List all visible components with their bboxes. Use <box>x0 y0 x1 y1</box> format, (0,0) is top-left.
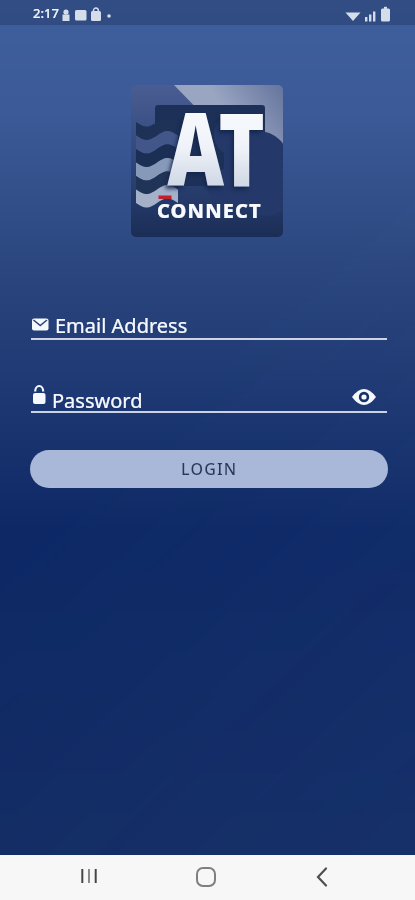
staticText: Password <box>52 387 143 414</box>
button[interactable]: LOGIN <box>30 450 388 488</box>
button[interactable] <box>306 861 338 893</box>
button[interactable] <box>74 861 106 893</box>
button[interactable]: Password <box>24 378 394 423</box>
staticText: Email Address <box>55 312 188 339</box>
staticText: AT <box>167 85 265 216</box>
staticText: 2:17 <box>33 4 59 22</box>
button[interactable]: Email Address <box>24 305 394 350</box>
staticText: CONNECT <box>157 197 262 221</box>
button[interactable] <box>352 388 376 406</box>
button[interactable] <box>190 861 222 893</box>
staticText: LOGIN <box>181 458 238 480</box>
